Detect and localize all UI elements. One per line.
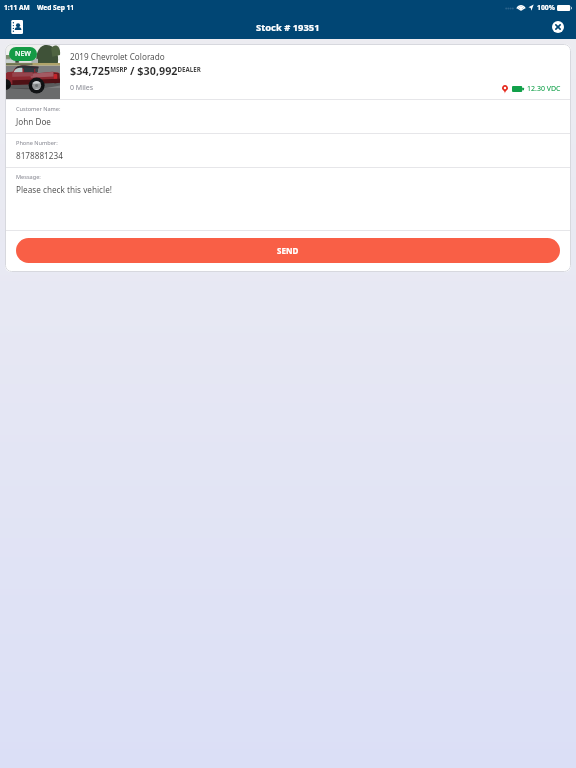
staticText: 8178881234 — [16, 150, 63, 161]
staticText: Wed Sep 11 — [37, 3, 75, 12]
staticText: 1:11 AM — [4, 3, 30, 12]
staticText: 2019 Chevrolet Colorado — [70, 51, 165, 62]
button[interactable]: Customer Name: — [5, 100, 571, 133]
staticText: 0 Miles — [70, 83, 94, 93]
staticText: John Doe — [16, 116, 51, 127]
button[interactable]: SEND — [16, 238, 560, 263]
button[interactable]: Phone Number: — [5, 134, 571, 167]
button[interactable]: Message: — [5, 168, 571, 230]
staticText: NEW — [15, 49, 31, 59]
button[interactable]: Close — [548, 17, 568, 37]
staticText: Message: — [16, 173, 41, 181]
staticText: 12.30 VDC — [527, 84, 561, 94]
staticText: Customer Name: — [16, 105, 61, 113]
staticText: Stock # 19351 — [256, 21, 320, 34]
staticText: Phone Number: — [16, 139, 58, 147]
staticText: 100% — [537, 3, 555, 12]
staticText: Please check this vehicle! — [16, 184, 112, 195]
button[interactable]: Contacts — [6, 17, 26, 37]
staticText: SEND — [277, 245, 299, 256]
staticText: $34,725MSRP / $30,992DEALER — [70, 63, 201, 78]
